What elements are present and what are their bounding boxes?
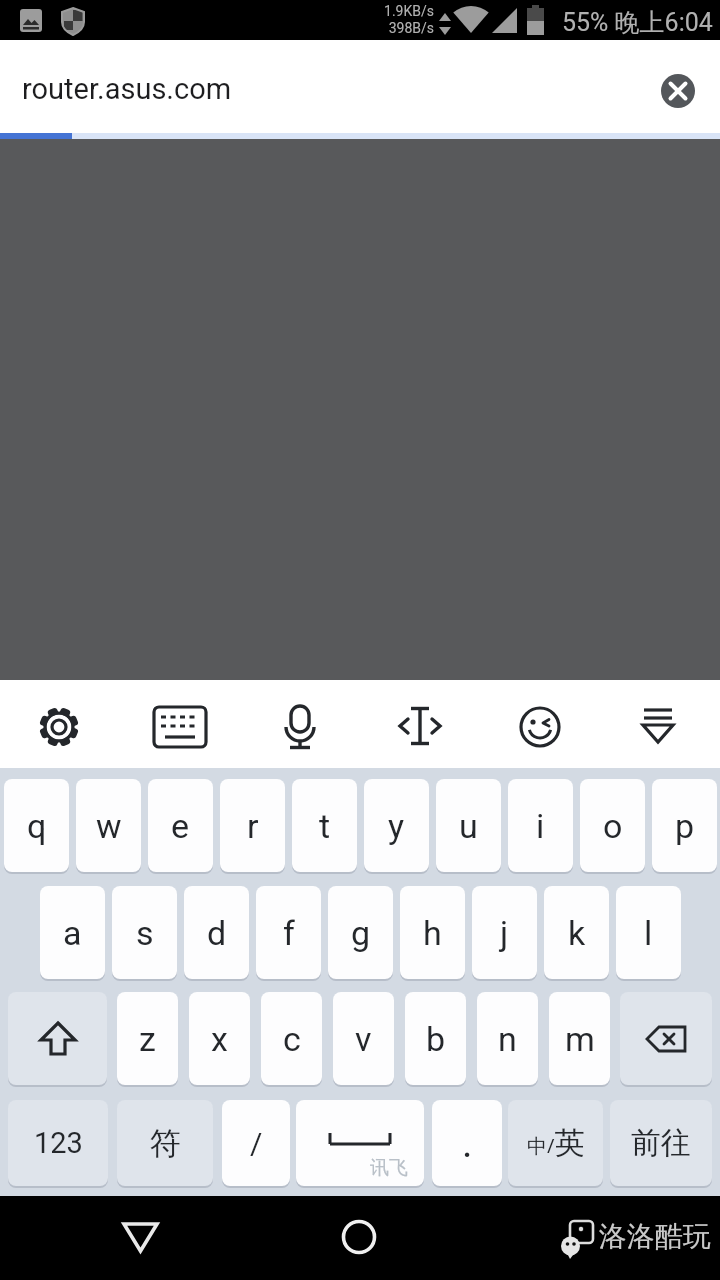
staticText: e [171, 806, 190, 846]
staticText: t [319, 806, 331, 846]
staticText: 前往 [631, 1124, 691, 1162]
button[interactable]: i [508, 779, 573, 872]
staticText: 中/英 [527, 1124, 585, 1162]
button[interactable]: u [436, 779, 501, 872]
button[interactable]: j [472, 886, 537, 979]
button[interactable]: d [184, 886, 249, 979]
button[interactable]: / [222, 1100, 290, 1186]
staticText: f [283, 913, 295, 953]
button[interactable]: 符 [117, 1100, 213, 1186]
staticText: u [459, 806, 478, 846]
staticText: m [565, 1019, 595, 1059]
staticText: 讯飞 [370, 1156, 408, 1180]
staticText: k [568, 913, 586, 953]
button[interactable]: l [616, 886, 681, 979]
staticText: z [139, 1019, 156, 1059]
staticText: b [426, 1019, 446, 1059]
button[interactable] [329, 1207, 389, 1267]
staticText: s [136, 913, 154, 953]
button[interactable]: b [405, 992, 466, 1085]
staticText: 55% 晚上6:04 [562, 7, 713, 38]
button[interactable]: w [76, 779, 141, 872]
staticText: 123 [34, 1126, 83, 1160]
button[interactable]: t [292, 779, 357, 872]
button[interactable]: 中/英 [508, 1100, 603, 1186]
button[interactable]: q [4, 779, 69, 872]
staticText: x [211, 1019, 228, 1059]
button[interactable]: 讯飞 [296, 1100, 424, 1186]
staticText: p [675, 806, 695, 846]
staticText: o [603, 806, 623, 846]
button[interactable] [8, 992, 107, 1085]
button[interactable]: s [112, 886, 177, 979]
button[interactable] [620, 992, 712, 1085]
staticText: r [247, 806, 259, 846]
button[interactable] [661, 74, 695, 108]
staticText: c [283, 1019, 301, 1059]
button[interactable] [280, 702, 320, 752]
staticText: v [355, 1019, 372, 1059]
staticText: router.asus.com [22, 72, 232, 106]
staticText: 398B/s [360, 20, 434, 36]
button[interactable]: e [148, 779, 213, 872]
button[interactable] [110, 1208, 172, 1268]
staticText: g [351, 913, 371, 953]
button[interactable]: k [544, 886, 609, 979]
button[interactable] [636, 706, 680, 746]
staticText: d [207, 913, 227, 953]
button[interactable]: y [364, 779, 429, 872]
staticText: h [423, 913, 442, 953]
staticText: a [63, 913, 82, 953]
button[interactable] [152, 705, 208, 749]
button[interactable]: 123 [8, 1100, 108, 1186]
button[interactable]: h [400, 886, 465, 979]
staticText: i [536, 806, 545, 846]
staticText: q [27, 806, 47, 846]
button[interactable]: 前往 [610, 1100, 712, 1186]
staticText: / [250, 1126, 263, 1161]
button[interactable]: . [432, 1100, 502, 1186]
button[interactable] [519, 706, 561, 748]
staticText: n [498, 1019, 517, 1059]
button[interactable]: a [40, 886, 105, 979]
button[interactable]: r [220, 779, 285, 872]
button[interactable] [29, 697, 89, 757]
button[interactable]: x [189, 992, 250, 1085]
staticText: 符 [150, 1124, 181, 1163]
staticText: l [644, 913, 653, 953]
staticText: 1.9KB/s [360, 3, 434, 19]
staticText: . [462, 1120, 473, 1167]
button[interactable] [398, 705, 442, 747]
button[interactable]: o [580, 779, 645, 872]
button[interactable]: f [256, 886, 321, 979]
button[interactable]: n [477, 992, 538, 1085]
button[interactable]: p [652, 779, 717, 872]
staticText: j [500, 913, 509, 953]
button[interactable]: c [261, 992, 322, 1085]
staticText: y [388, 806, 405, 846]
staticText: 洛洛酷玩 [599, 1219, 711, 1254]
staticText: w [96, 806, 122, 846]
button[interactable]: v [333, 992, 394, 1085]
button[interactable]: g [328, 886, 393, 979]
button[interactable]: m [549, 992, 610, 1085]
button[interactable]: z [117, 992, 178, 1085]
